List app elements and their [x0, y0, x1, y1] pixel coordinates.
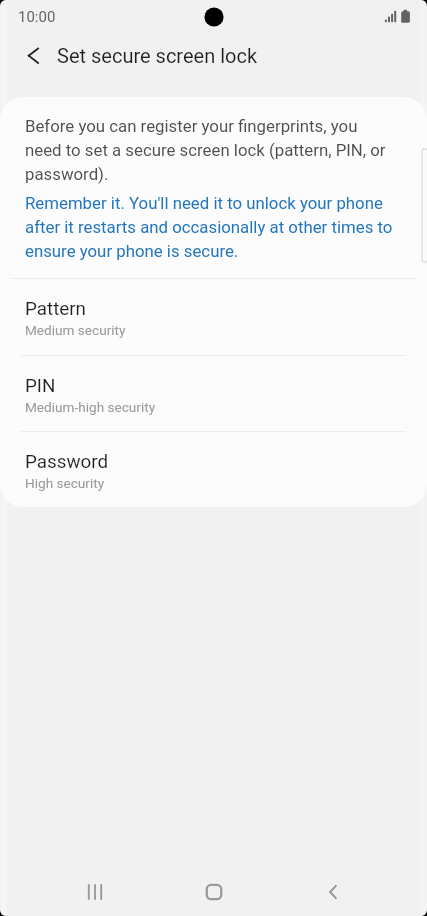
button[interactable]: Pattern: [0, 278, 427, 355]
button[interactable]: Navigate up: [13, 36, 53, 76]
button[interactable]: PIN: [0, 355, 427, 431]
staticText: PIN: [25, 375, 56, 396]
staticText: Medium-high security: [25, 399, 156, 415]
button[interactable]: Password: [0, 431, 427, 507]
staticText: 10:00: [18, 8, 56, 26]
button[interactable]: Back: [273, 868, 392, 916]
staticText: Remember it. You'll need it to unlock yo…: [25, 190, 394, 262]
button[interactable]: Home: [154, 868, 273, 916]
staticText: Password: [25, 451, 109, 472]
staticText: Set secure screen lock: [57, 44, 258, 67]
staticText: High security: [25, 475, 105, 491]
staticText: Pattern: [25, 298, 86, 319]
staticText: Medium security: [25, 322, 126, 338]
staticText: Before you can register your fingerprint…: [25, 113, 394, 185]
button[interactable]: Recent apps: [35, 868, 154, 916]
